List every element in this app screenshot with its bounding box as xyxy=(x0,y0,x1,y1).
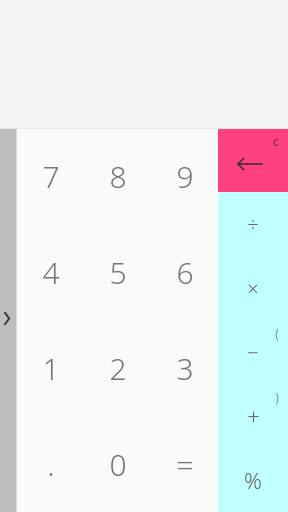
staticText: × xyxy=(247,275,259,302)
staticText: 8 xyxy=(109,156,127,197)
button[interactable]: 1 xyxy=(17,320,84,416)
button[interactable]: . xyxy=(17,416,84,512)
button[interactable]: c xyxy=(264,129,288,153)
button[interactable]: − xyxy=(218,320,288,384)
staticText: 0 xyxy=(109,444,127,485)
button[interactable]: 9 xyxy=(151,129,218,224)
button[interactable]: 2 xyxy=(84,320,151,416)
staticText: = xyxy=(176,444,194,485)
button[interactable]: + xyxy=(218,384,288,448)
staticText: ÷ xyxy=(247,211,259,238)
button[interactable]: 4 xyxy=(17,224,84,320)
button[interactable]: ÷ xyxy=(218,192,288,256)
button[interactable]: 8 xyxy=(84,129,151,224)
button[interactable]: ( xyxy=(266,320,288,346)
button[interactable]: 7 xyxy=(17,129,84,224)
button[interactable]: 0 xyxy=(84,416,151,512)
staticText: 3 xyxy=(176,348,194,389)
button[interactable]: 3 xyxy=(151,320,218,416)
staticText: ) xyxy=(275,388,279,406)
staticText: 5 xyxy=(109,252,127,293)
staticText: . xyxy=(47,444,55,485)
staticText: ( xyxy=(275,324,279,342)
button[interactable]: = xyxy=(151,416,218,512)
button[interactable]: Backspace xyxy=(218,129,288,192)
staticText: 6 xyxy=(176,252,194,293)
staticText: + xyxy=(247,401,260,431)
staticText: − xyxy=(247,339,259,366)
staticText: 7 xyxy=(42,156,60,197)
staticText: c xyxy=(273,133,279,149)
button[interactable]: ) xyxy=(266,384,288,410)
button[interactable]: × xyxy=(218,256,288,320)
staticText: % xyxy=(244,465,262,495)
button[interactable]: 6 xyxy=(151,224,218,320)
button[interactable]: 5 xyxy=(84,224,151,320)
staticText: 2 xyxy=(109,348,127,389)
staticText: 9 xyxy=(176,156,194,197)
staticText: 4 xyxy=(42,252,60,293)
button[interactable]: Expand history panel xyxy=(0,129,17,512)
staticText: 1 xyxy=(42,348,60,389)
button[interactable]: % xyxy=(218,448,288,512)
